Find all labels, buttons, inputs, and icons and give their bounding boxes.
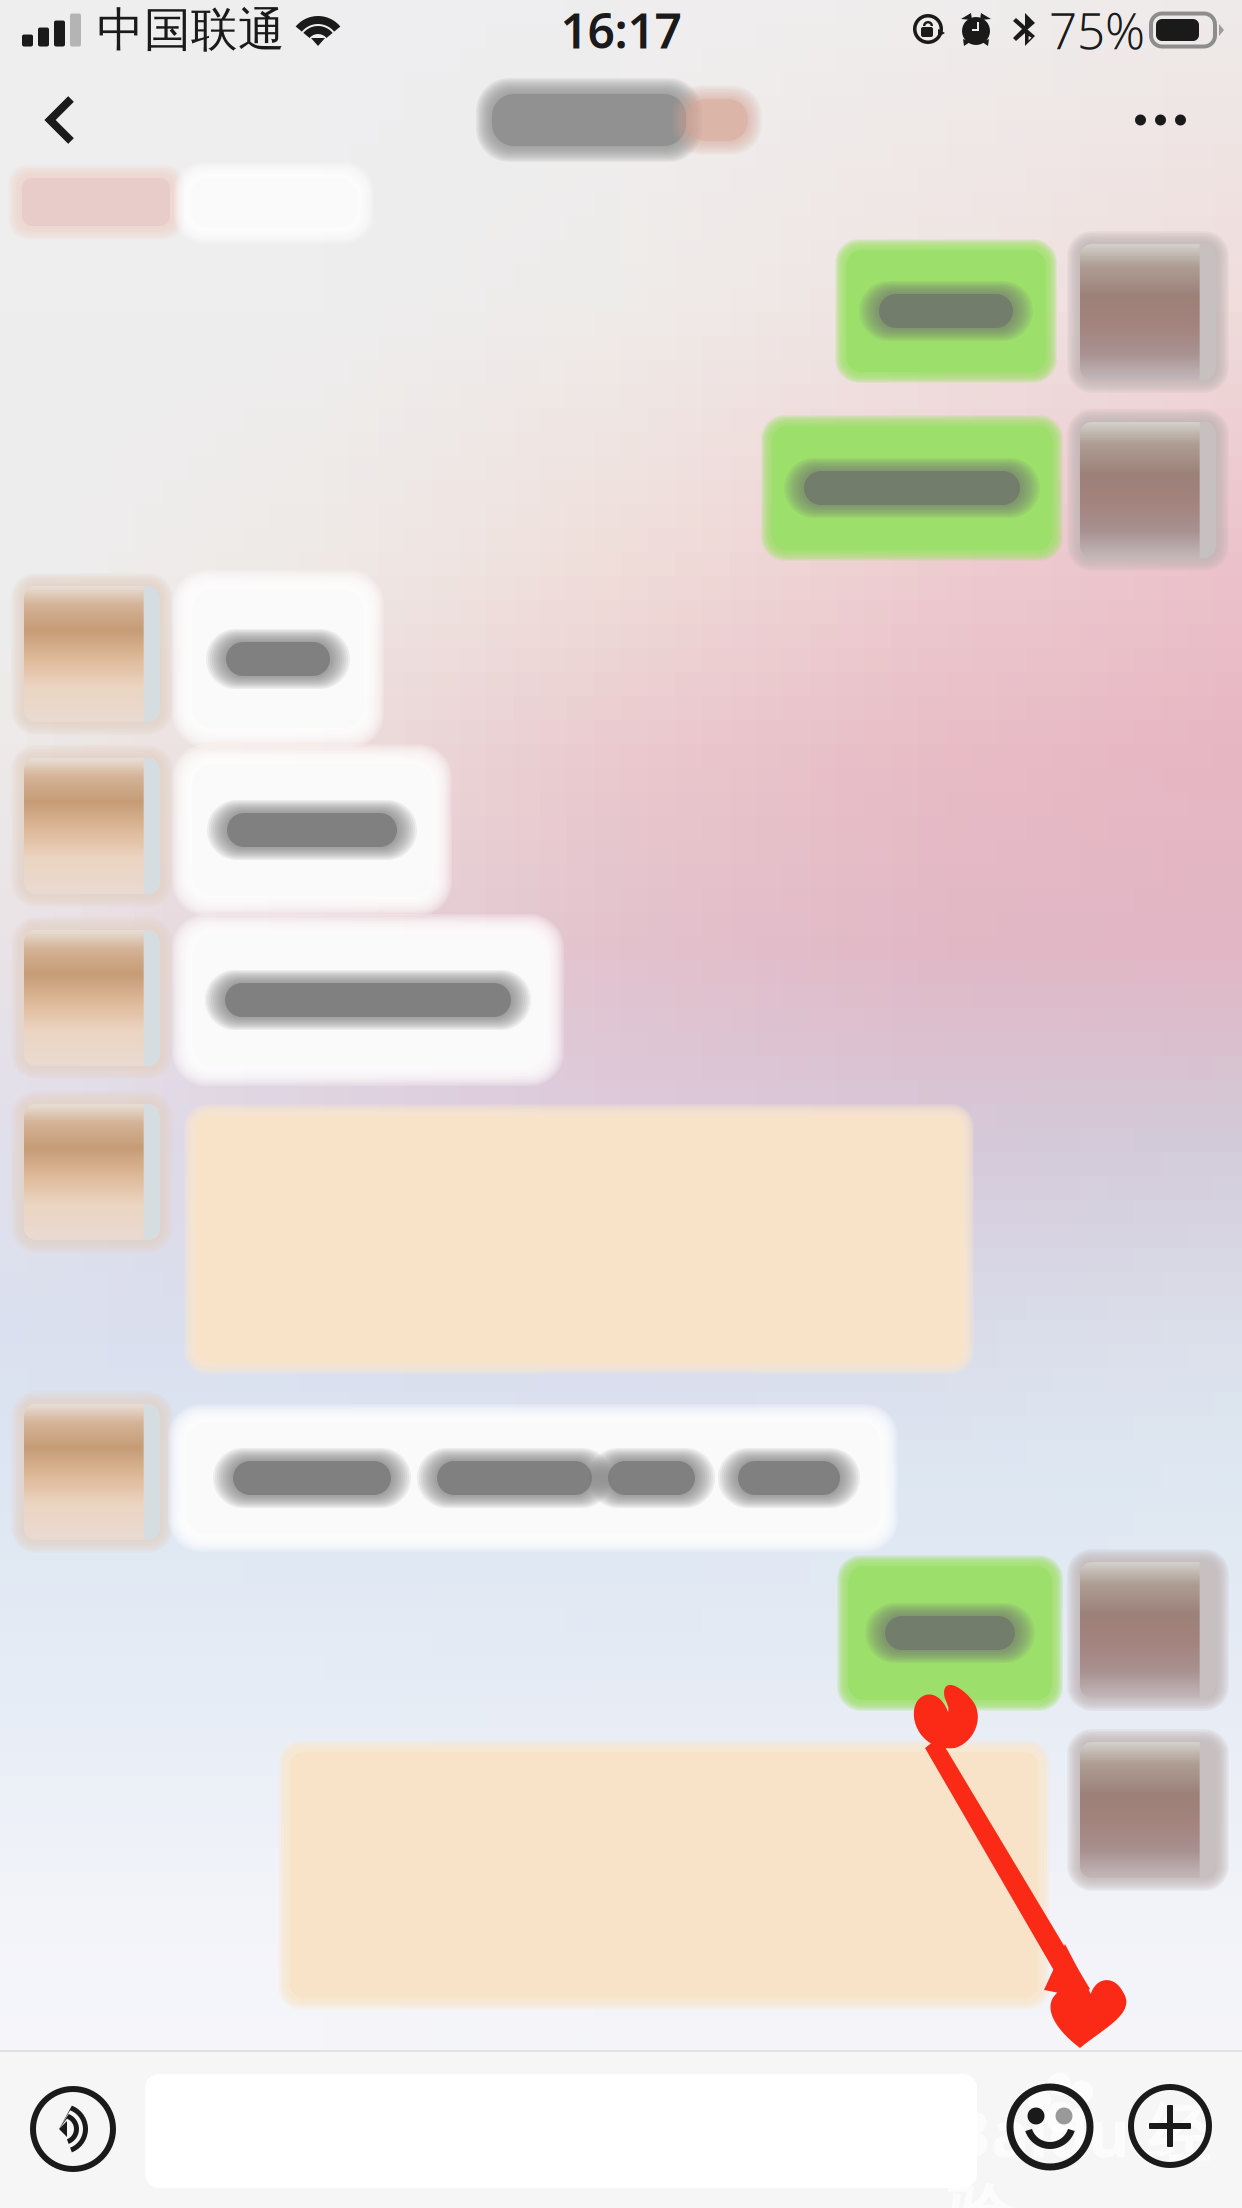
button[interactable]: Voice message <box>32 2088 114 2170</box>
staticText: Baidu 经验 <box>948 2090 1211 2208</box>
staticText: 中国联通 <box>97 1 285 59</box>
button[interactable]: More <box>1095 60 1242 180</box>
button[interactable]: Emoji <box>1009 2086 1091 2168</box>
staticText: 16:17 <box>560 0 681 62</box>
button[interactable]: Back <box>0 60 120 180</box>
staticText: 75% <box>1049 0 1145 63</box>
button[interactable]: More options <box>1130 2086 1210 2166</box>
